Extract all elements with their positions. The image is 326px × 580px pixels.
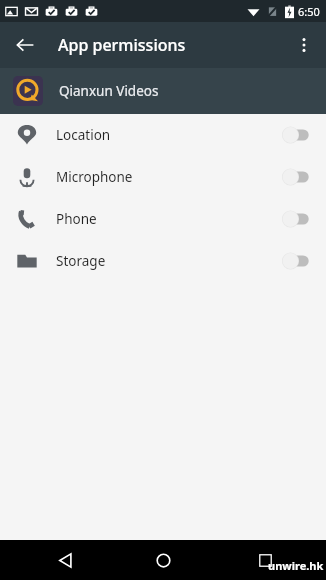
button[interactable]: Phone <box>0 198 326 240</box>
staticText: App permissions <box>58 34 186 56</box>
button[interactable]: Location permission toggle <box>277 121 313 149</box>
staticText: Microphone <box>56 168 133 186</box>
button[interactable]: Storage <box>0 240 326 282</box>
button[interactable]: Storage permission toggle <box>277 247 313 275</box>
button[interactable]: Microphone <box>0 156 326 198</box>
button[interactable]: Recents <box>248 543 282 577</box>
staticText: Qianxun Videos <box>59 82 159 100</box>
button[interactable]: Microphone permission toggle <box>277 163 313 191</box>
staticText: 6:50 <box>298 4 320 19</box>
button[interactable]: Qianxun Videos <box>0 68 326 114</box>
staticText: unwire.hk <box>268 558 324 573</box>
staticText: Location <box>56 126 111 144</box>
staticText: Phone <box>56 210 97 228</box>
button[interactable]: Back <box>48 543 82 577</box>
staticText: Storage <box>56 252 106 270</box>
button[interactable]: Phone permission toggle <box>277 205 313 233</box>
button[interactable]: Location <box>0 114 326 156</box>
button[interactable]: More options <box>286 27 322 63</box>
button[interactable]: Home <box>146 543 180 577</box>
button[interactable]: Back <box>8 28 42 62</box>
